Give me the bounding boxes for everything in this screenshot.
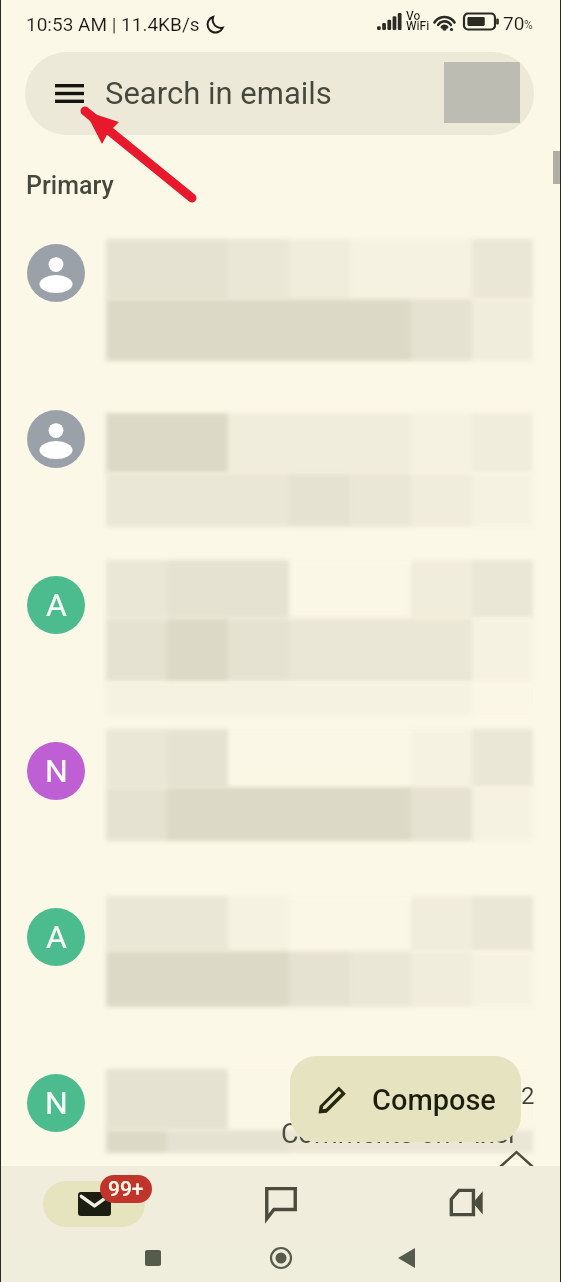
staticText: WiFi [406, 19, 430, 33]
button[interactable]: Back [389, 1241, 423, 1275]
other: Open navigation menu [55, 84, 84, 103]
staticText: N [45, 1084, 68, 1122]
button[interactable]: Open navigation menu [25, 52, 534, 135]
staticText: Comments on Pixel [281, 1118, 515, 1150]
staticText: A [46, 586, 67, 624]
staticText: Primary [26, 171, 114, 200]
button[interactable] [0, 725, 561, 891]
staticText: Search in emails [105, 75, 332, 111]
staticText: N [45, 752, 68, 790]
button[interactable]: Meet [434, 1172, 499, 1232]
staticText: Compose [372, 1083, 496, 1117]
staticText: A [46, 918, 67, 956]
button[interactable] [0, 227, 561, 393]
button[interactable] [0, 393, 561, 559]
button[interactable] [0, 1057, 561, 1223]
button[interactable]: Mail [43, 1181, 145, 1227]
button[interactable]: Home [264, 1241, 298, 1275]
staticText: 2 [521, 1082, 535, 1110]
button[interactable] [0, 559, 561, 725]
staticText: 99+ [108, 1177, 144, 1202]
button[interactable]: Compose [290, 1056, 521, 1142]
button[interactable]: Recent apps [136, 1241, 170, 1275]
staticText: % [524, 18, 533, 32]
staticText: 70 [503, 12, 525, 34]
staticText: Vo [406, 9, 421, 23]
button[interactable]: Chat [248, 1172, 313, 1232]
button[interactable] [0, 891, 561, 1057]
staticText: 10:53 AM | 11.4KB/s [26, 13, 200, 35]
